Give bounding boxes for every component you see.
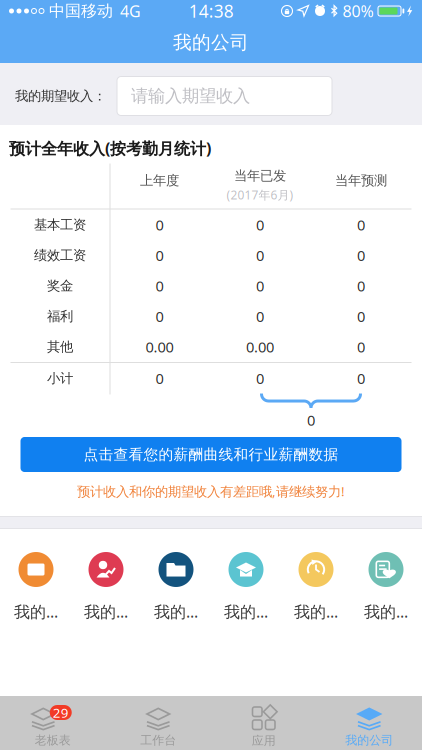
staticText: 老板表 [35, 733, 71, 748]
button[interactable]: 我的公司 [316, 696, 422, 750]
staticText: 0 [155, 245, 163, 265]
staticText: 奖金 [47, 278, 73, 294]
staticText: 小计 [47, 370, 73, 386]
staticText: 工作台 [140, 733, 176, 748]
staticText: 0 [256, 368, 264, 388]
staticText: 当年已发 [234, 167, 286, 184]
staticText: 0 [357, 368, 365, 388]
button[interactable]: 工作台 [105, 696, 211, 750]
staticText: 我的期望收入： [15, 88, 106, 104]
staticText: 0 [307, 410, 315, 430]
staticText: 当年预测 [335, 172, 387, 189]
button[interactable]: 我的... [141, 529, 211, 624]
staticText: 我的... [364, 601, 408, 622]
button[interactable]: 我的... [71, 529, 141, 624]
staticText: 绩效工资 [34, 247, 86, 263]
staticText: 我的... [84, 601, 128, 622]
staticText: 0 [357, 276, 365, 295]
staticText: 4G [120, 0, 141, 22]
staticText: 请输入期望收入 [131, 85, 250, 107]
button[interactable]: 请输入期望收入 [117, 76, 332, 115]
button[interactable]: 应用 [211, 696, 316, 750]
staticText: 其他 [47, 339, 73, 355]
staticText: 点击查看您的薪酬曲线和行业薪酬数据 [83, 445, 338, 463]
button[interactable]: 29 [0, 696, 105, 750]
staticText: 我的... [294, 601, 338, 622]
staticText: 我的公司 [345, 733, 393, 748]
staticText: 福利 [47, 308, 73, 324]
staticText: 应用 [252, 733, 276, 748]
staticText: 我的... [224, 601, 268, 622]
staticText: 0 [155, 368, 163, 388]
staticText: 我的... [154, 601, 198, 622]
button[interactable]: 我的... [351, 529, 421, 624]
staticText: 我的公司 [173, 31, 249, 54]
staticText: 0 [357, 215, 365, 234]
button[interactable]: 我的... [211, 529, 281, 624]
staticText: 29 [53, 704, 69, 721]
staticText: 0 [357, 245, 365, 265]
staticText: 14:38 [189, 0, 234, 22]
staticText: 0.00 [246, 337, 274, 356]
staticText: 上年度 [140, 172, 179, 189]
staticText: 0 [357, 306, 365, 326]
staticText: (2017年6月) [226, 187, 293, 203]
staticText: 0 [357, 337, 365, 356]
staticText: 中国移动 [49, 1, 113, 21]
button[interactable]: 我的... [1, 529, 71, 624]
staticText: 0 [256, 306, 264, 326]
staticText: 基本工资 [34, 217, 86, 233]
staticText: 0 [155, 276, 163, 295]
staticText: 0 [155, 215, 163, 234]
staticText: 80% [342, 0, 373, 22]
staticText: 0.00 [145, 337, 173, 356]
staticText: 0 [256, 245, 264, 265]
staticText: 我的... [14, 601, 58, 622]
staticText: 预计全年收入(按考勤月统计) [9, 138, 211, 159]
staticText: 0 [256, 276, 264, 295]
button[interactable]: 点击查看您的薪酬曲线和行业薪酬数据 [20, 437, 401, 472]
staticText: 0 [256, 215, 264, 234]
staticText: 预计收入和你的期望收入有差距哦,请继续努力! [77, 482, 345, 500]
button[interactable]: 我的... [281, 529, 351, 624]
staticText: 0 [155, 306, 163, 326]
